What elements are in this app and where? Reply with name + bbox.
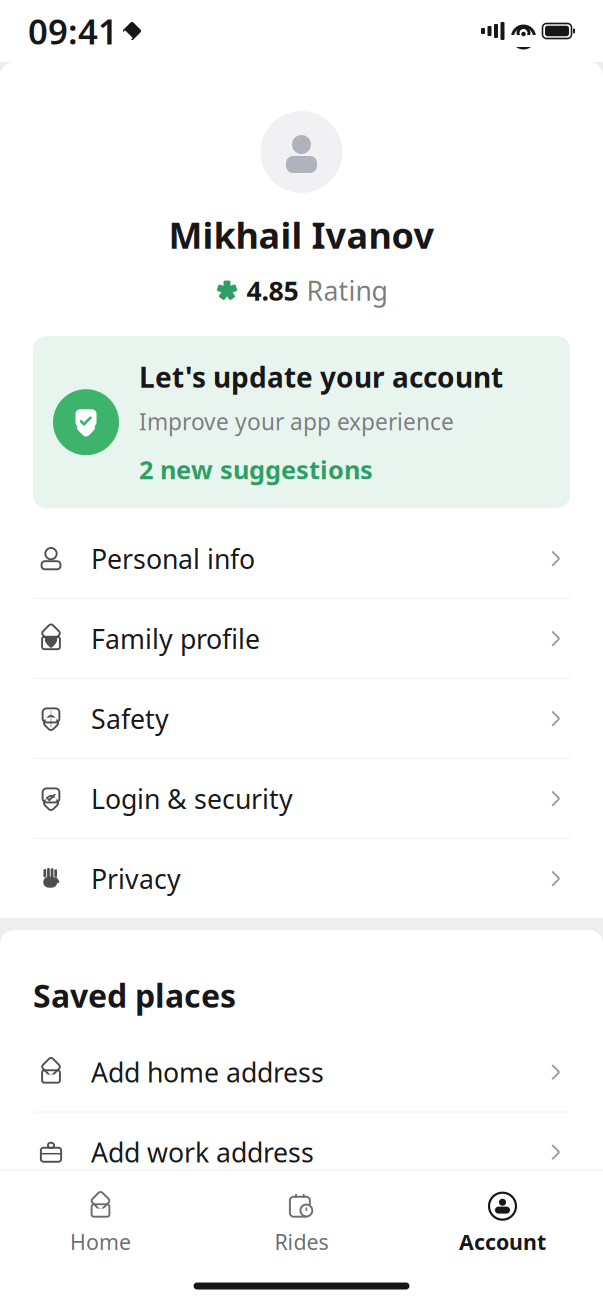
button[interactable]: Family profile bbox=[0, 599, 603, 678]
staticText: Safety bbox=[91, 701, 169, 736]
staticText: 09:41 bbox=[28, 8, 118, 54]
staticText: 4.85 bbox=[246, 273, 298, 308]
button[interactable]: Safety bbox=[0, 679, 603, 758]
staticText: Mikhail Ivanov bbox=[168, 211, 434, 259]
staticText: 2 new suggestions bbox=[139, 452, 373, 486]
staticText: Login & security bbox=[91, 781, 293, 816]
button[interactable]: Add a place bbox=[0, 1193, 603, 1272]
staticText: Saved places bbox=[33, 974, 236, 1017]
staticText: Add home address bbox=[91, 1054, 324, 1090]
button[interactable]: Login & security bbox=[0, 759, 603, 838]
staticText: Add work address bbox=[91, 1134, 314, 1170]
button[interactable]: Privacy bbox=[0, 839, 603, 918]
staticText: Rating bbox=[306, 273, 387, 308]
staticText: Let's update your account bbox=[139, 358, 503, 395]
staticText: Improve your app experience bbox=[139, 406, 454, 436]
button[interactable]: Personal info bbox=[0, 519, 603, 598]
staticText: Privacy bbox=[91, 861, 181, 896]
staticText: Add a place bbox=[91, 1214, 235, 1250]
staticText: Family profile bbox=[91, 621, 260, 656]
staticText: Account bbox=[459, 1228, 546, 1256]
button[interactable]: Let's update your account bbox=[33, 336, 570, 508]
staticText: Personal info bbox=[91, 541, 255, 576]
staticText: Home bbox=[70, 1228, 131, 1256]
staticText: Rides bbox=[274, 1228, 328, 1256]
button[interactable]: Add work address bbox=[0, 1113, 603, 1192]
button[interactable]: Account bbox=[402, 1181, 603, 1268]
button[interactable]: Add home address bbox=[0, 1033, 603, 1112]
button[interactable]: Rides bbox=[201, 1181, 402, 1268]
button[interactable]: Home bbox=[0, 1181, 201, 1268]
